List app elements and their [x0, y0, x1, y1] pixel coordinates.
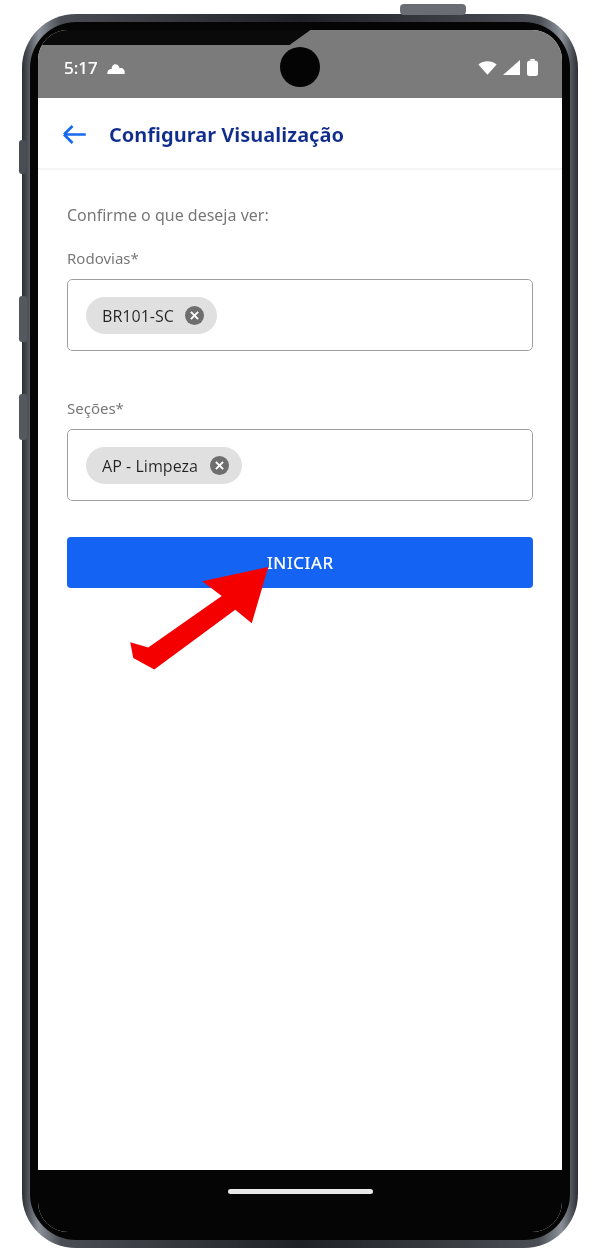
staticText: Rodovias* [67, 248, 139, 268]
button[interactable]: AP - Limpeza [67, 429, 533, 501]
staticText: AP - Limpeza [102, 455, 199, 477]
staticText: Confirme o que deseja ver: [67, 204, 269, 226]
staticText: INICIAR [267, 551, 334, 574]
button[interactable]: AP - Limpeza [86, 447, 242, 484]
button[interactable]: INICIAR [67, 537, 533, 588]
button[interactable]: Remover AP - Limpeza [210, 456, 229, 475]
button[interactable]: Voltar [52, 112, 96, 156]
button[interactable]: Remover BR101-SC [185, 306, 204, 325]
button[interactable]: BR101-SC [67, 279, 533, 351]
staticText: 5:17 [64, 56, 98, 79]
staticText: Seções* [67, 398, 124, 418]
staticText: BR101-SC [102, 305, 174, 327]
button[interactable]: BR101-SC [86, 297, 217, 334]
staticText: Configurar Visualização [109, 121, 344, 148]
